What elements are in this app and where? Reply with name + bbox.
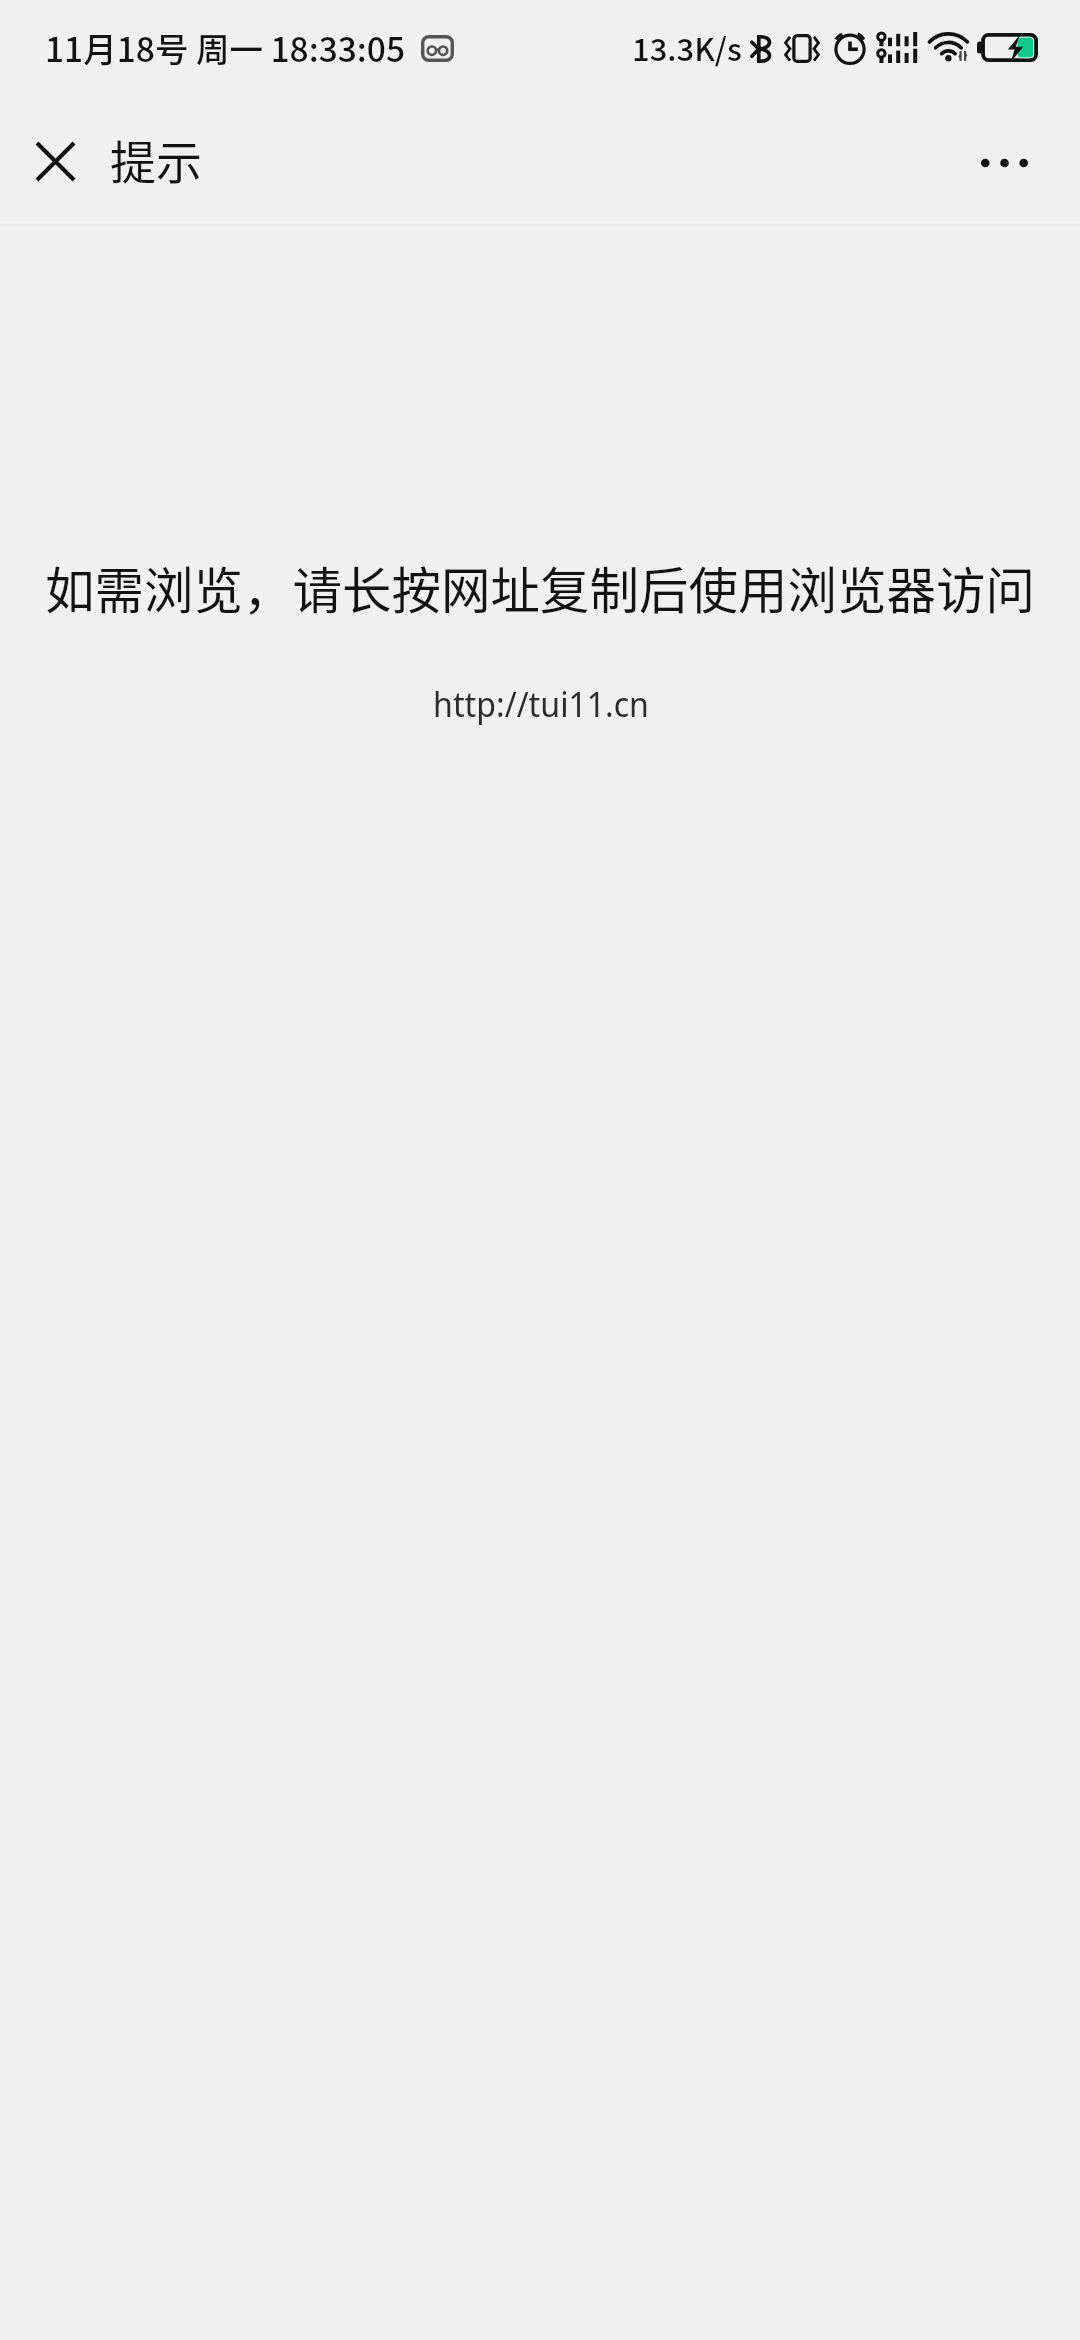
button[interactable]: Close	[18, 124, 92, 198]
staticText: 13.3K/s	[632, 25, 742, 70]
button[interactable]: More options	[967, 126, 1041, 200]
button[interactable]: http://tui11.cn	[433, 681, 649, 727]
staticText: 如需浏览，请长按网址复制后使用浏览器访问	[0, 552, 1080, 624]
staticText: 提示	[110, 126, 202, 193]
staticText: 11月18号 周一 18:33:05	[45, 23, 405, 72]
